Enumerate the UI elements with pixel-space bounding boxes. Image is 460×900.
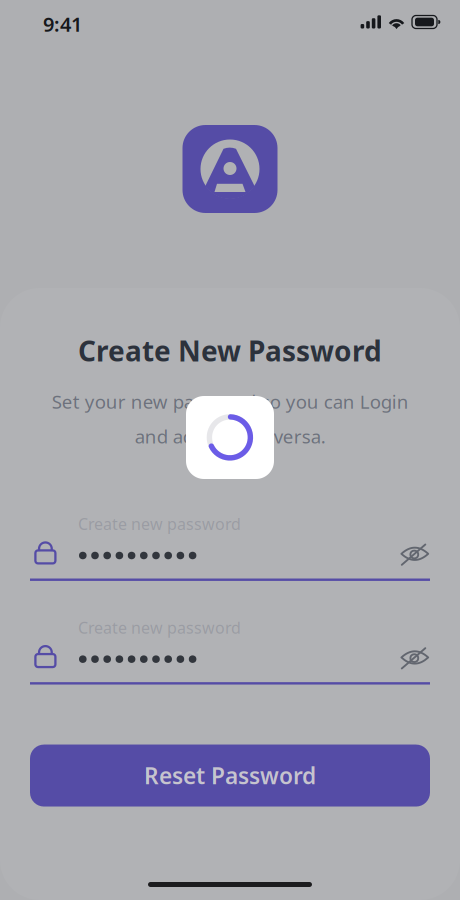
staticText: Create New Password	[78, 332, 382, 369]
staticText: Create new password	[78, 513, 241, 534]
staticText: 9:41	[43, 11, 82, 37]
staticText: Reset Password	[144, 760, 316, 791]
staticText: Set your new password so you can Login a…	[51, 389, 408, 449]
staticText: Create new password	[78, 617, 241, 638]
button[interactable]: Reset Password	[30, 745, 430, 807]
button[interactable]: Show password	[392, 536, 430, 570]
button[interactable]: Show password	[392, 640, 430, 674]
